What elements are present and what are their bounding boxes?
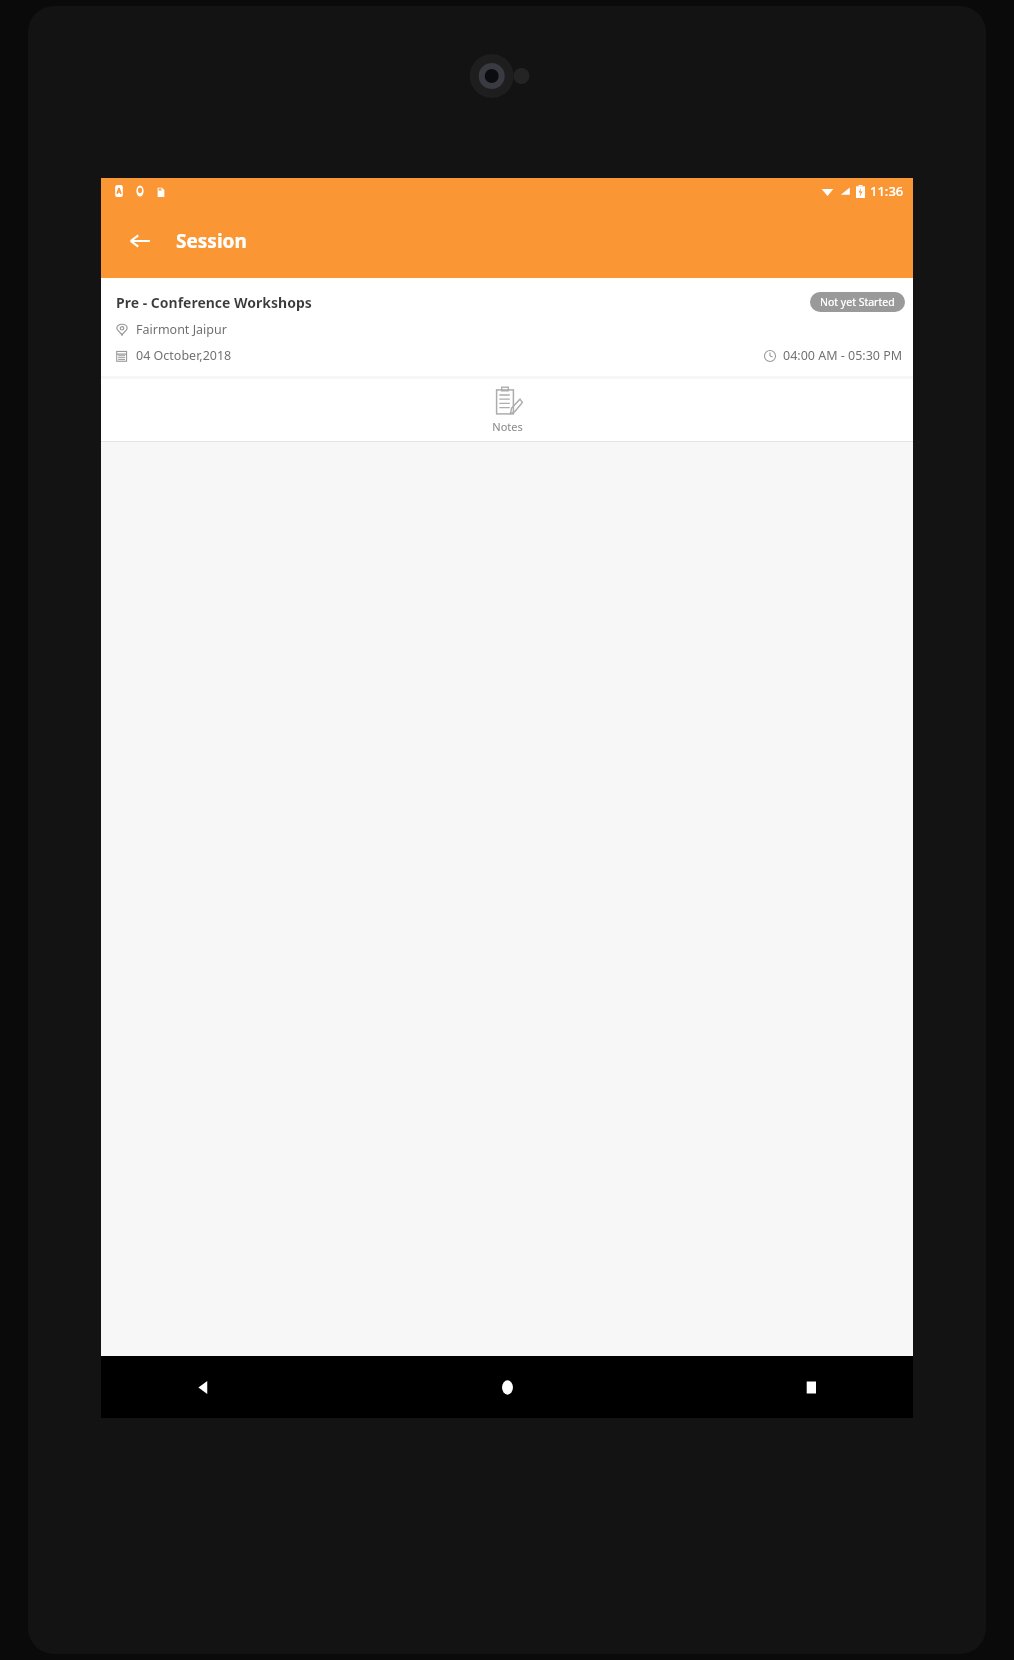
staticText: 04:00 AM - 05:30 PM <box>783 347 903 364</box>
button[interactable]: Home <box>485 1365 529 1409</box>
button[interactable]: Back <box>121 222 159 260</box>
button[interactable]: Recents <box>789 1365 833 1409</box>
staticText: 04 October,2018 <box>136 347 232 364</box>
staticText: Notes <box>492 419 523 434</box>
button[interactable]: Pre - Conference Workshops <box>101 278 913 376</box>
staticText: Pre - Conference Workshops <box>116 293 810 312</box>
staticText: Fairmont Jaipur <box>136 321 227 338</box>
button[interactable]: Notes <box>101 379 913 441</box>
staticText: Session <box>176 228 247 254</box>
button[interactable]: Back <box>181 1365 225 1409</box>
staticText: 11:36 <box>870 182 904 200</box>
staticText: Not yet Started <box>820 295 895 309</box>
